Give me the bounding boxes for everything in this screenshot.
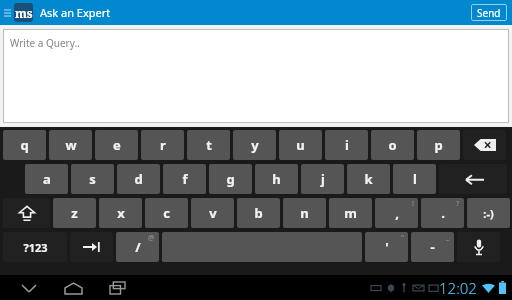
button[interactable]: Backspace <box>463 130 506 160</box>
button[interactable]: w <box>49 130 92 160</box>
button[interactable]: v <box>191 198 234 228</box>
button[interactable]: g <box>209 164 252 194</box>
button[interactable]: l <box>393 164 436 194</box>
staticText: o <box>388 136 397 154</box>
staticText: ?123 <box>23 240 48 255</box>
button[interactable]: a <box>25 164 68 194</box>
staticText: - <box>430 238 435 256</box>
staticText: s <box>89 170 96 188</box>
staticText: m <box>344 204 357 222</box>
button[interactable]: o <box>371 130 414 160</box>
button[interactable]: Voice input <box>457 232 500 262</box>
staticText: ms <box>15 5 33 21</box>
staticText: t <box>206 136 212 154</box>
button[interactable]: d <box>117 164 160 194</box>
button[interactable]: z <box>53 198 96 228</box>
staticText: y <box>251 136 259 154</box>
button[interactable]: ?123 <box>3 232 67 262</box>
button[interactable]: Send <box>471 4 507 21</box>
staticText: c <box>163 204 170 222</box>
staticText: p <box>434 136 443 154</box>
button[interactable]: j <box>301 164 344 194</box>
staticText: ' <box>385 238 389 256</box>
button[interactable]: . <box>421 198 464 228</box>
staticText: i <box>345 136 349 154</box>
staticText: l <box>413 170 417 188</box>
button[interactable]: Home <box>58 277 88 299</box>
button[interactable]: Write a Query.. <box>3 29 509 123</box>
button[interactable]: y <box>233 130 276 160</box>
button[interactable]: Shift <box>3 198 50 228</box>
button[interactable]: Recent apps <box>102 277 132 299</box>
staticText: ? <box>456 199 460 209</box>
staticText: b <box>254 204 263 222</box>
button[interactable]: u <box>279 130 322 160</box>
button[interactable]: App logo <box>14 3 33 22</box>
button[interactable]: k <box>347 164 390 194</box>
staticText: e <box>113 136 121 154</box>
button[interactable]: c <box>145 198 188 228</box>
staticText: @ <box>148 233 155 243</box>
staticText: f <box>182 170 188 188</box>
button[interactable]: :-) <box>467 198 510 228</box>
button[interactable]: t <box>187 130 230 160</box>
staticText: :-) <box>483 206 494 221</box>
button[interactable]: / <box>116 232 159 262</box>
staticText: ! <box>412 199 414 209</box>
staticText: 12:02 <box>439 278 477 298</box>
button[interactable]: n <box>283 198 326 228</box>
button[interactable]: q <box>3 130 46 160</box>
button[interactable]: i <box>325 130 368 160</box>
staticText: g <box>226 170 235 188</box>
staticText: Ask an Expert <box>40 5 111 20</box>
button[interactable]: Menu <box>2 0 12 25</box>
staticText: _ <box>446 233 450 243</box>
button[interactable]: Back <box>14 277 44 299</box>
staticText: a <box>43 170 51 188</box>
staticText: r <box>160 136 166 154</box>
staticText: v <box>209 204 217 222</box>
button[interactable]: b <box>237 198 280 228</box>
staticText: z <box>71 204 78 222</box>
button[interactable]: e <box>95 130 138 160</box>
staticText: k <box>364 170 373 188</box>
staticText: Send <box>477 6 501 20</box>
staticText: / <box>135 238 141 256</box>
staticText: u <box>296 136 305 154</box>
button[interactable]: - <box>411 232 454 262</box>
staticText: w <box>65 136 77 154</box>
button[interactable]: s <box>71 164 114 194</box>
staticText: d <box>134 170 143 188</box>
button[interactable]: h <box>255 164 298 194</box>
button[interactable]: m <box>329 198 372 228</box>
staticText: " <box>401 233 404 243</box>
button[interactable]: Enter <box>439 164 507 194</box>
button[interactable]: p <box>417 130 460 160</box>
staticText: x <box>117 204 125 222</box>
staticText: h <box>272 170 281 188</box>
button[interactable]: x <box>99 198 142 228</box>
staticText: j <box>321 170 325 188</box>
staticText: , <box>395 204 399 222</box>
staticText: n <box>300 204 309 222</box>
staticText: Write a Query.. <box>10 36 80 50</box>
staticText: q <box>20 136 29 154</box>
button[interactable]: , <box>375 198 418 228</box>
button[interactable]: Tab <box>70 232 113 262</box>
button[interactable]: ' <box>365 232 408 262</box>
staticText: . <box>441 204 445 222</box>
button[interactable]: r <box>141 130 184 160</box>
button[interactable]: f <box>163 164 206 194</box>
